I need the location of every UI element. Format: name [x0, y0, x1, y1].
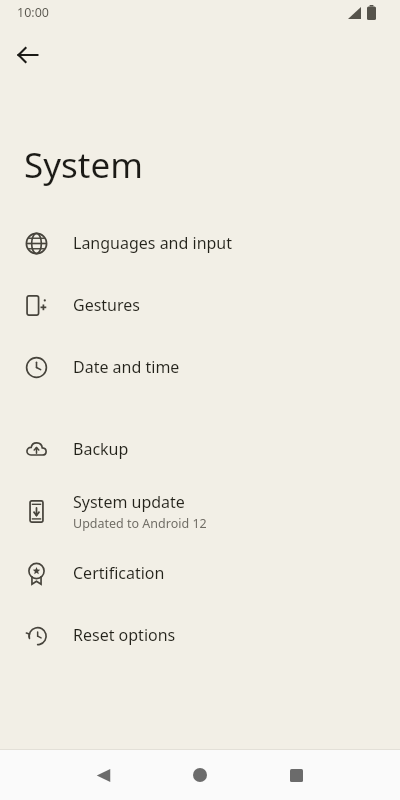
- button[interactable]: Date and time: [0, 336, 400, 398]
- button[interactable]: Certification: [0, 542, 400, 604]
- button[interactable]: Languages and input: [0, 212, 400, 274]
- staticText: 10:00: [17, 4, 49, 21]
- button[interactable]: Home: [178, 750, 222, 800]
- button[interactable]: Back: [6, 33, 50, 77]
- button[interactable]: Back: [81, 750, 125, 800]
- staticText: System update: [73, 491, 185, 513]
- staticText: Gestures: [73, 294, 140, 316]
- staticText: Date and time: [73, 356, 180, 378]
- staticText: Updated to Android 12: [73, 515, 207, 532]
- button[interactable]: Reset options: [0, 604, 400, 666]
- button[interactable]: System update: [0, 480, 400, 542]
- button[interactable]: Recent apps: [274, 750, 318, 800]
- staticText: Reset options: [73, 624, 176, 646]
- button[interactable]: Gestures: [0, 274, 400, 336]
- staticText: Languages and input: [73, 232, 233, 254]
- button[interactable]: Backup: [0, 418, 400, 480]
- staticText: Backup: [73, 438, 129, 460]
- staticText: Certification: [73, 562, 165, 584]
- staticText: System: [24, 141, 143, 189]
